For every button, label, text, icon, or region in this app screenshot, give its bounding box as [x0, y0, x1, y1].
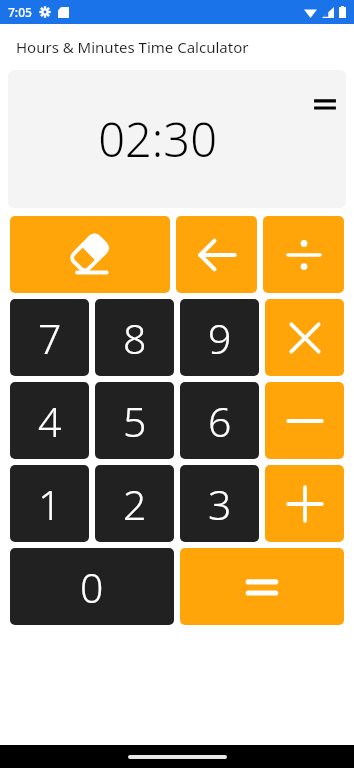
- staticText: 02:30: [98, 107, 217, 171]
- button[interactable]: 7: [10, 299, 89, 376]
- staticText: Hours & Minutes Time Calculator: [16, 37, 338, 57]
- button[interactable]: 0: [10, 548, 174, 625]
- button[interactable]: 5: [95, 382, 174, 459]
- staticText: 1: [38, 476, 62, 532]
- button[interactable]: Equals: [180, 548, 344, 625]
- button[interactable]: 3: [180, 465, 259, 542]
- button[interactable]: Plus: [265, 465, 344, 542]
- button[interactable]: 4: [10, 382, 89, 459]
- button[interactable]: 8: [95, 299, 174, 376]
- button[interactable]: Multiply: [265, 299, 344, 376]
- staticText: 6: [208, 393, 232, 449]
- staticText: 0: [80, 559, 104, 615]
- staticText: 9: [208, 310, 232, 366]
- button[interactable]: 1: [10, 465, 89, 542]
- button[interactable]: Clear: [10, 216, 170, 293]
- staticText: 5: [123, 393, 147, 449]
- button[interactable]: 02:30: [8, 70, 346, 208]
- button[interactable]: 2: [95, 465, 174, 542]
- button[interactable]: Minus: [265, 382, 344, 459]
- button[interactable]: Divide: [263, 216, 344, 293]
- staticText: 8: [123, 310, 147, 366]
- staticText: 7:05: [8, 4, 32, 20]
- staticText: 2: [123, 476, 147, 532]
- staticText: 4: [38, 393, 62, 449]
- staticText: 7: [38, 310, 62, 366]
- button[interactable]: 9: [180, 299, 259, 376]
- button[interactable]: Backspace: [176, 216, 257, 293]
- button[interactable]: 6: [180, 382, 259, 459]
- staticText: 3: [208, 476, 232, 532]
